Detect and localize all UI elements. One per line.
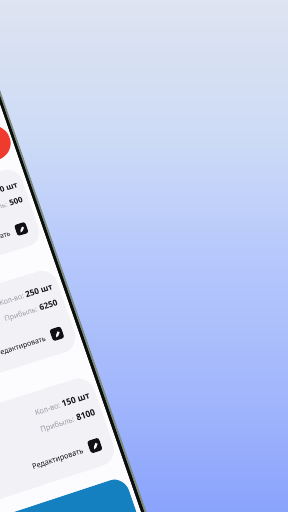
button[interactable]: Кол-во: [0, 267, 80, 414]
staticText: Прибыль: [39, 412, 78, 434]
button[interactable]: Кол-во: [0, 166, 44, 305]
button[interactable]: Удалить [0, 121, 16, 165]
staticText: Прибыль: [0, 198, 11, 218]
button[interactable]: Кол-во: [0, 374, 119, 512]
staticText: Редактировать [0, 229, 12, 252]
staticText: Кол-во: [33, 398, 64, 417]
button[interactable] [0, 476, 142, 512]
button[interactable]: Редактировать [14, 222, 29, 236]
staticText: 500 шт [0, 179, 19, 196]
staticText: Кол-во: [0, 289, 27, 307]
button[interactable]: Редактировать [49, 326, 65, 342]
staticText: 500 [7, 193, 24, 207]
staticText: 150 шт [60, 388, 91, 409]
button[interactable]: Редактировать [87, 437, 103, 454]
staticText: 8100 [74, 405, 97, 423]
staticText: 6250 [37, 296, 59, 312]
staticText: Редактировать [0, 333, 47, 358]
staticText: Прибыль: [3, 302, 41, 323]
staticText: 250 шт [23, 280, 54, 299]
staticText: Редактировать [31, 445, 84, 471]
